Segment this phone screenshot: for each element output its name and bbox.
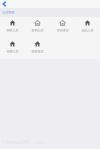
button[interactable]: 材料入库 <box>0 17 25 38</box>
button[interactable]: 销售退货 <box>25 38 50 59</box>
button[interactable]: 库存查询 <box>50 17 75 38</box>
staticText: 公共管理 <box>2 10 14 14</box>
staticText: 材料出库 <box>31 28 43 32</box>
staticText: 销售出库 <box>6 49 18 53</box>
button[interactable]: 销售出库 <box>0 38 25 59</box>
button[interactable]: 成品入库 <box>75 17 100 38</box>
staticText: 成品入库 <box>81 28 93 32</box>
button[interactable]: 材料出库 <box>25 17 50 38</box>
staticText: 销售退货 <box>31 49 43 53</box>
staticText: 材料入库 <box>6 28 18 32</box>
staticText: 库存查询 <box>56 28 68 32</box>
button[interactable]: Back <box>0 0 14 8</box>
